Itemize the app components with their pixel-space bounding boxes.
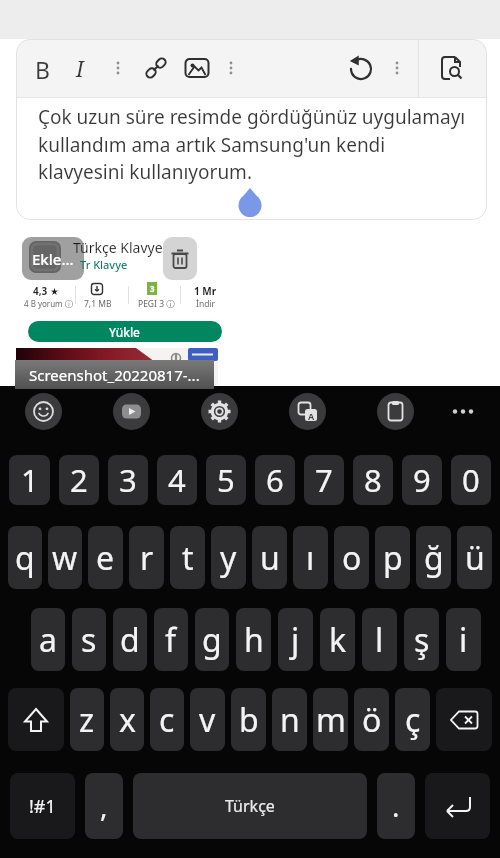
staticText: l (375, 618, 384, 662)
button[interactable]: j (278, 608, 313, 671)
button[interactable]: 7 (304, 455, 344, 505)
staticText: u (260, 536, 280, 580)
staticText: v (199, 698, 216, 742)
button[interactable] (425, 773, 490, 839)
staticText: a (39, 618, 57, 662)
button[interactable]: p (375, 526, 410, 589)
button[interactable] (115, 60, 121, 76)
button[interactable]: 1 (9, 455, 50, 505)
button[interactable] (394, 60, 400, 76)
button[interactable] (25, 393, 62, 430)
button[interactable]: b (231, 688, 266, 751)
staticText: 4,3 ★ (33, 284, 59, 298)
button[interactable] (201, 393, 238, 430)
staticText: Türkçe Klavye (73, 238, 163, 257)
button[interactable] (113, 393, 150, 430)
button[interactable]: q (8, 526, 42, 589)
button[interactable]: 8 (353, 455, 393, 505)
staticText: 1 (21, 459, 39, 501)
button[interactable]: Türkçe (133, 773, 367, 839)
staticText: Yükle (109, 324, 141, 340)
staticText: ğ (424, 536, 444, 580)
button[interactable] (452, 393, 480, 430)
staticText: e (96, 536, 115, 580)
button[interactable]: e (88, 526, 123, 589)
button[interactable]: 5 (206, 455, 246, 505)
button[interactable]: w (48, 526, 82, 589)
staticText: j (291, 618, 300, 662)
button[interactable]: !#1 (10, 773, 75, 839)
button[interactable]: I (76, 55, 84, 84)
button[interactable]: l (362, 608, 397, 671)
button[interactable]: c (150, 688, 184, 751)
button[interactable]: d (113, 608, 147, 671)
button[interactable]: ş (404, 608, 439, 671)
button[interactable]: ö (354, 688, 389, 751)
staticText: s (81, 618, 97, 662)
staticText: 0 (462, 459, 480, 501)
button[interactable]: 6 (255, 455, 295, 505)
button[interactable] (143, 55, 169, 81)
staticText: İndir (196, 298, 216, 310)
staticText: x (119, 698, 136, 742)
button[interactable]: u (252, 526, 287, 589)
staticText: t (182, 536, 194, 580)
button[interactable]: r (129, 526, 164, 589)
button[interactable]: ü (457, 526, 492, 589)
button[interactable]: 9 (402, 455, 442, 505)
button[interactable] (436, 688, 492, 751)
staticText: Screenshot_20220817-... (29, 365, 200, 385)
button[interactable]: ç (395, 688, 430, 751)
button[interactable]: a (31, 608, 65, 671)
staticText: p (383, 536, 403, 580)
button[interactable]: s (72, 608, 106, 671)
button[interactable]: ı (293, 526, 328, 589)
button[interactable]: Yükle (28, 321, 222, 342)
staticText: m (316, 698, 346, 742)
button[interactable]: y (211, 526, 246, 589)
button[interactable]: A (289, 393, 326, 430)
button[interactable]: t (170, 526, 205, 589)
staticText: 6 (266, 459, 284, 501)
button[interactable]: o (334, 526, 369, 589)
button[interactable]: 4 (157, 455, 197, 505)
button[interactable] (228, 60, 234, 76)
button[interactable]: , (85, 773, 123, 839)
button[interactable]: B (35, 54, 50, 85)
staticText: f (165, 618, 177, 662)
button[interactable] (8, 688, 64, 751)
staticText: ü (465, 536, 485, 580)
button[interactable] (347, 54, 375, 82)
button[interactable]: x (110, 688, 144, 751)
staticText: . (392, 787, 400, 825)
button[interactable]: Ekle... (22, 237, 84, 280)
button[interactable]: z (70, 688, 104, 751)
staticText: Ekle... (32, 249, 74, 269)
staticText: y (220, 536, 237, 580)
button[interactable] (184, 55, 210, 81)
button[interactable] (377, 393, 414, 430)
button[interactable]: 0 (451, 455, 491, 505)
staticText: !#1 (29, 794, 56, 819)
staticText: 9 (413, 459, 431, 501)
button[interactable]: 2 (59, 455, 99, 505)
button[interactable] (163, 237, 197, 280)
staticText: g (202, 618, 222, 662)
button[interactable]: v (190, 688, 225, 751)
button[interactable]: h (236, 608, 271, 671)
button[interactable]: m (313, 688, 348, 751)
button[interactable]: . (377, 773, 415, 839)
staticText: 8 (364, 459, 382, 501)
button[interactable] (437, 54, 465, 82)
staticText: h (244, 618, 264, 662)
staticText: n (280, 698, 300, 742)
staticText: 3 (150, 283, 155, 294)
button[interactable]: n (272, 688, 307, 751)
button[interactable]: i (446, 608, 481, 671)
button[interactable]: ğ (416, 526, 451, 589)
button[interactable]: 3 (108, 455, 148, 505)
button[interactable]: g (195, 608, 229, 671)
button[interactable]: k (320, 608, 355, 671)
staticText: , (100, 787, 108, 825)
button[interactable]: f (154, 608, 188, 671)
